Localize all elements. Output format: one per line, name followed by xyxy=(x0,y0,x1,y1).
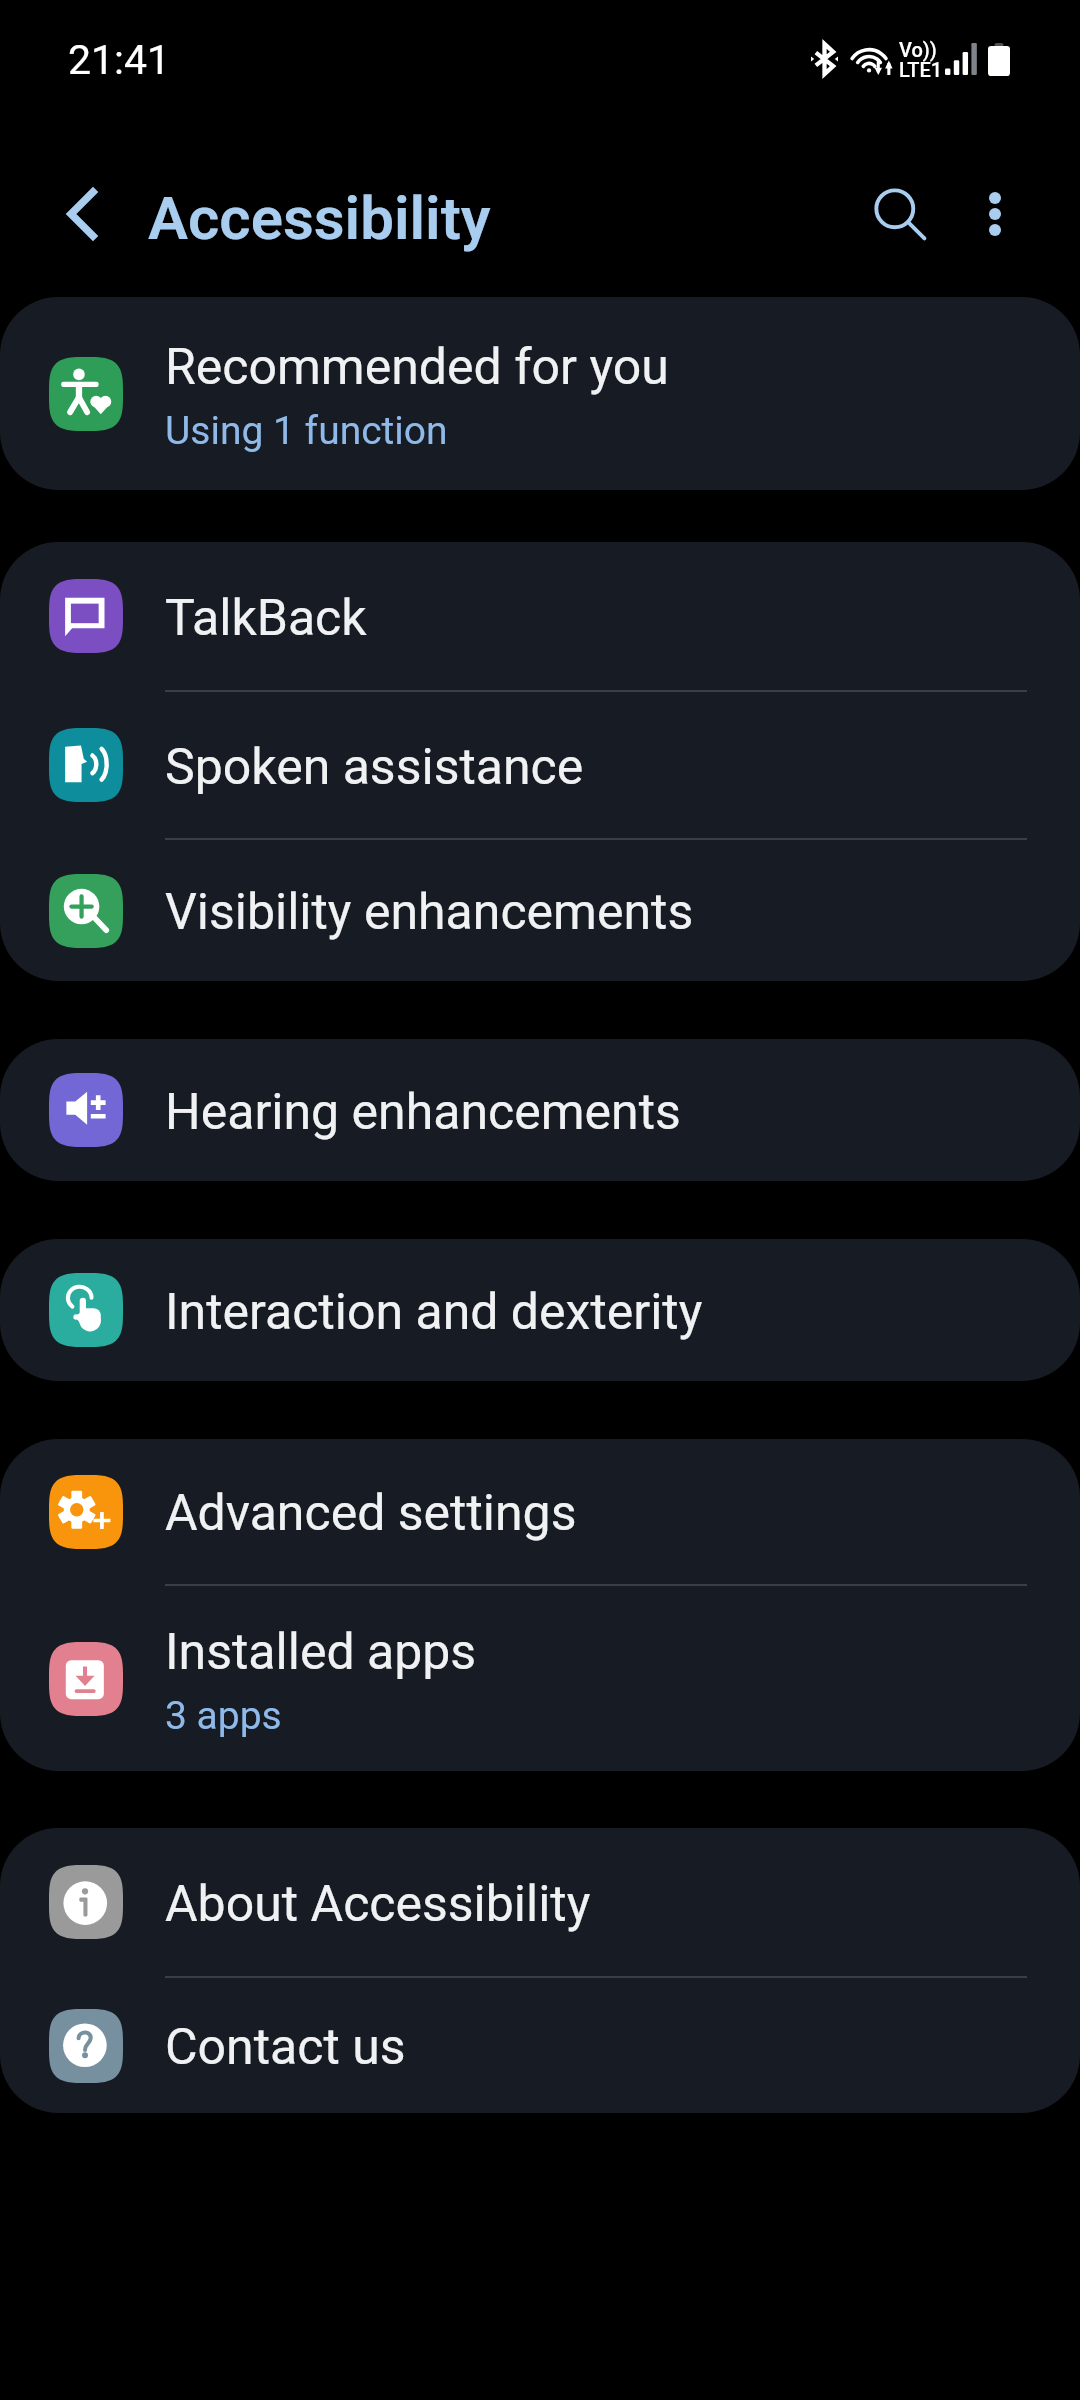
button[interactable]: Installed apps xyxy=(0,1586,1080,1771)
staticText: Contact us xyxy=(165,2018,406,2077)
staticText: Advanced settings xyxy=(165,1484,577,1543)
staticText: Hearing enhancements xyxy=(165,1083,681,1142)
staticText: Accessibility xyxy=(148,183,491,253)
button[interactable]: Search xyxy=(840,154,960,274)
button[interactable]: Contact us xyxy=(0,1978,1080,2113)
button[interactable]: Navigate up xyxy=(22,154,142,274)
button[interactable]: About Accessibility xyxy=(0,1828,1080,1976)
staticText: Spoken assistance xyxy=(165,738,584,797)
button[interactable]: Interaction and dexterity xyxy=(0,1239,1080,1381)
button[interactable]: Hearing enhancements xyxy=(0,1039,1080,1181)
staticText: 3 apps xyxy=(165,1693,282,1739)
staticText: About Accessibility xyxy=(165,1875,591,1934)
button[interactable]: Recommended for you xyxy=(0,297,1080,490)
staticText: TalkBack xyxy=(165,589,367,648)
staticText: Vo)) xyxy=(899,38,937,61)
staticText: Installed apps xyxy=(165,1623,477,1682)
staticText: 21:41 xyxy=(68,36,171,84)
button[interactable]: Visibility enhancements xyxy=(0,840,1080,981)
staticText: Using 1 function xyxy=(165,408,448,454)
button[interactable]: Advanced settings xyxy=(0,1439,1080,1584)
staticText: Interaction and dexterity xyxy=(165,1283,703,1342)
staticText: LTE1 xyxy=(899,58,943,81)
button[interactable]: Spoken assistance xyxy=(0,692,1080,838)
staticText: Recommended for you xyxy=(165,338,669,397)
button[interactable]: TalkBack xyxy=(0,542,1080,690)
staticText: Visibility enhancements xyxy=(165,883,694,942)
button[interactable]: More options xyxy=(935,154,1055,274)
